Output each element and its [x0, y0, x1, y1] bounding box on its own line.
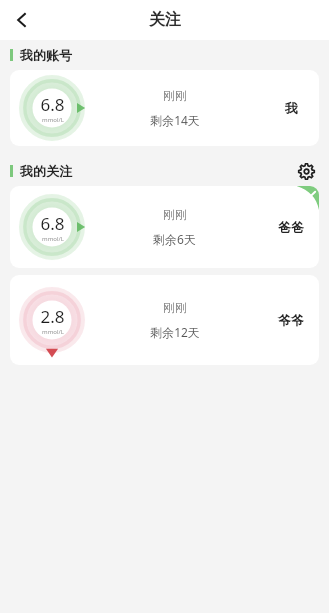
staticText: mmol/L [42, 235, 64, 243]
staticText: 刚刚 [163, 300, 187, 315]
button[interactable]: Back [0, 0, 44, 40]
staticText: 爷爷 [278, 312, 304, 328]
button[interactable]: 6.8 [10, 186, 319, 268]
staticText: 剩余14天 [150, 112, 200, 128]
button[interactable]: 6.8 [10, 70, 319, 146]
staticText: 6.8 [40, 212, 65, 235]
staticText: mmol/L [42, 116, 64, 124]
staticText: 爸爸 [278, 219, 304, 235]
staticText: 我的关注 [20, 163, 72, 179]
staticText: 剩余6天 [153, 231, 196, 247]
staticText: 刚刚 [163, 207, 187, 222]
staticText: 6.8 [40, 93, 65, 116]
button[interactable]: Settings [293, 158, 319, 184]
staticText: 2.8 [40, 305, 65, 328]
staticText: 我 [285, 100, 298, 116]
staticText: 关注 [149, 10, 181, 30]
staticText: 剩余12天 [150, 324, 200, 340]
button[interactable]: 2.8 [10, 275, 319, 365]
staticText: 我的账号 [20, 47, 72, 63]
staticText: mmol/L [42, 328, 64, 336]
staticText: 刚刚 [163, 88, 187, 103]
